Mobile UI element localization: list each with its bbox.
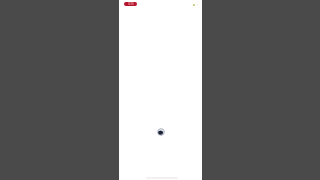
button[interactable]: Recording in progress — [124, 2, 137, 6]
other: Loading — [157, 128, 165, 136]
staticText: 0:15 — [128, 2, 134, 6]
